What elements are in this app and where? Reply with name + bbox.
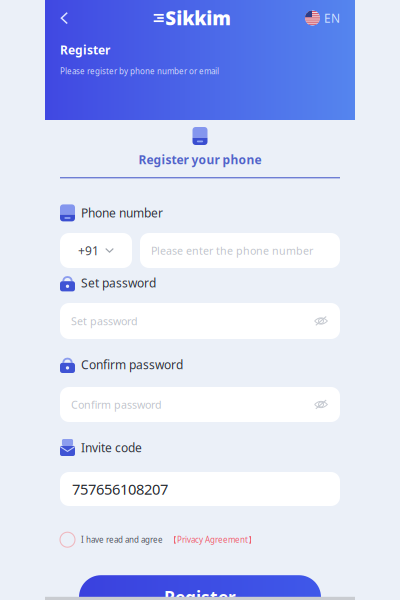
staticText: Register (164, 586, 236, 600)
staticText: Set password (81, 275, 156, 291)
button[interactable]: Register your phone (60, 127, 340, 166)
staticText: Confirm password (71, 397, 162, 412)
staticText: Please register by phone number or email (60, 66, 219, 76)
staticText: Set password (71, 314, 138, 328)
button[interactable]: Register (79, 575, 321, 600)
button[interactable]: Language English (305, 7, 340, 29)
staticText: Sikkim (165, 6, 231, 30)
button[interactable]: Country code +91 (60, 233, 132, 268)
staticText: I have read and agree (81, 534, 163, 545)
staticText: Register your phone (138, 151, 261, 167)
staticText: EN (324, 10, 340, 26)
staticText: Invite code (81, 439, 142, 455)
staticText: 【Privacy Agreement】 (169, 534, 256, 545)
staticText: +91 (78, 242, 99, 258)
staticText: Confirm password (81, 356, 183, 372)
staticText: Register (60, 42, 110, 58)
button[interactable]: I have read and agree (60, 532, 340, 548)
staticText: Phone number (81, 205, 163, 221)
staticText: 757656108207 (72, 479, 168, 499)
staticText: Please enter the phone number (151, 243, 313, 258)
button[interactable]: Back (60, 7, 80, 29)
